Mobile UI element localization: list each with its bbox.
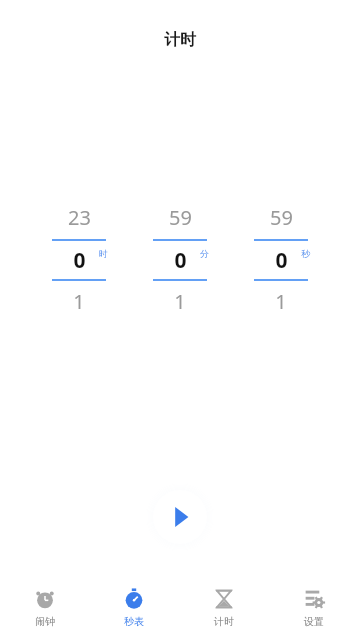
staticText: 59: [169, 204, 192, 231]
button[interactable]: 设置: [269, 578, 359, 638]
staticText: 秒: [301, 248, 310, 259]
staticText: 59: [270, 204, 293, 231]
staticText: 0: [174, 246, 187, 275]
staticText: 设置: [304, 615, 324, 628]
staticText: 秒表: [124, 615, 144, 628]
staticText: 闹钟: [35, 615, 55, 628]
staticText: 1: [275, 288, 287, 315]
staticText: 计时: [164, 30, 196, 50]
button[interactable]: 23: [52, 196, 106, 321]
button[interactable]: Start timer: [145, 482, 215, 552]
button[interactable]: 59: [254, 196, 308, 321]
staticText: 计时: [214, 615, 234, 628]
button[interactable]: 闹钟: [0, 578, 89, 638]
staticText: 分: [200, 248, 209, 259]
staticText: 时: [99, 248, 108, 259]
button[interactable]: 59: [153, 196, 207, 321]
staticText: 1: [174, 288, 186, 315]
staticText: 0: [73, 246, 86, 275]
staticText: 0: [275, 246, 288, 275]
button[interactable]: 计时: [179, 578, 269, 638]
staticText: 23: [68, 204, 91, 231]
staticText: 1: [73, 288, 85, 315]
button[interactable]: 秒表: [89, 578, 179, 638]
